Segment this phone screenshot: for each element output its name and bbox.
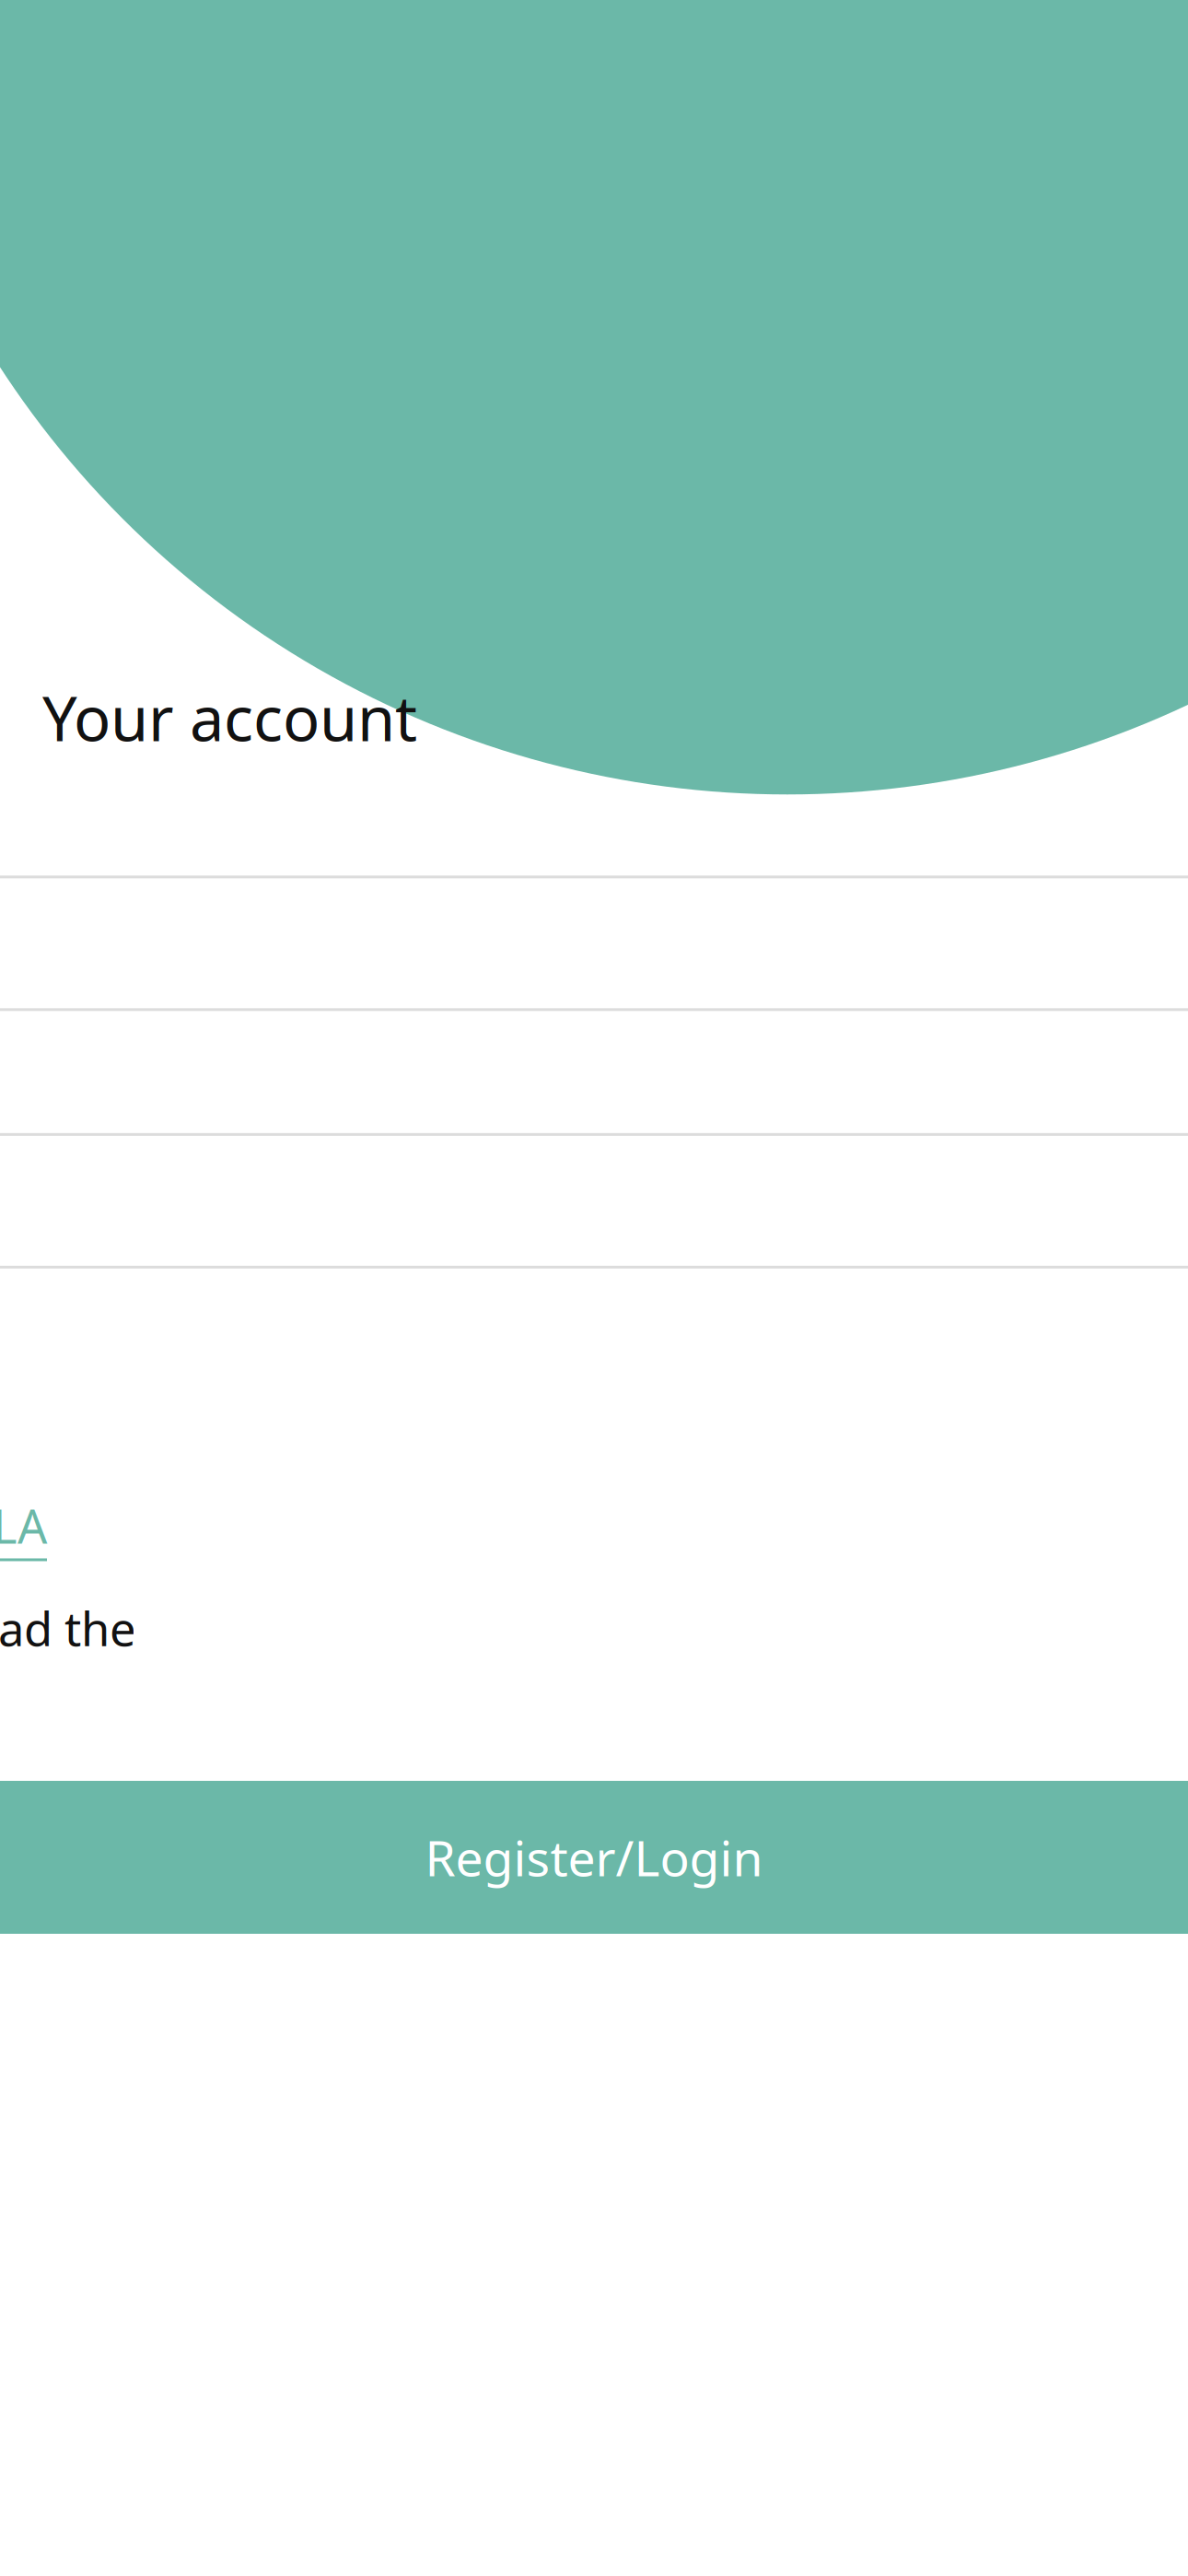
button[interactable]: Register/Login xyxy=(0,1781,1188,1934)
staticText: Register/Login xyxy=(425,1825,763,1890)
button[interactable]: I agree to the xyxy=(0,1497,1188,1558)
staticText: EULA xyxy=(0,1495,47,1557)
staticText: Your account xyxy=(42,677,417,758)
staticText: By signing up/logging in, I acknowledge … xyxy=(0,1597,136,1659)
button[interactable]: Enter your email address xyxy=(0,1134,1188,1267)
button[interactable]: Enter your name xyxy=(0,877,1188,1010)
